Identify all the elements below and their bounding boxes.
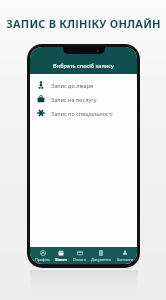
other: Візити: [58, 250, 64, 256]
button[interactable]: Документи: [90, 247, 112, 264]
other: Контакти: [122, 250, 128, 256]
button[interactable]: Запис на послугу: [30, 92, 137, 106]
other: Оплати: [77, 250, 83, 256]
staticText: Вибрать спосіб запису: [53, 62, 114, 69]
staticText: Запис по спеціальності: [51, 110, 113, 117]
button[interactable]: Оплати: [72, 247, 87, 264]
staticText: Профіль: [35, 257, 50, 262]
staticText: ЗАПИС В КЛІНІКУ ОНЛАЙН: [6, 16, 161, 31]
staticText: Документи: [91, 257, 111, 262]
button[interactable]: Запис по спеціальності: [30, 106, 137, 120]
staticText: Запис до лікаря: [51, 82, 94, 89]
button[interactable]: Візити: [54, 247, 68, 264]
other: Профіль: [40, 250, 46, 256]
staticText: Візити: [55, 257, 67, 262]
button[interactable]: Контакти: [116, 247, 134, 264]
other: Документи: [98, 250, 104, 256]
button[interactable]: Профіль: [34, 247, 51, 264]
staticText: Запис на послугу: [51, 96, 97, 103]
button[interactable]: Запис до лікаря: [30, 78, 137, 92]
staticText: Оплати: [73, 257, 86, 262]
staticText: Контакти: [117, 257, 133, 262]
